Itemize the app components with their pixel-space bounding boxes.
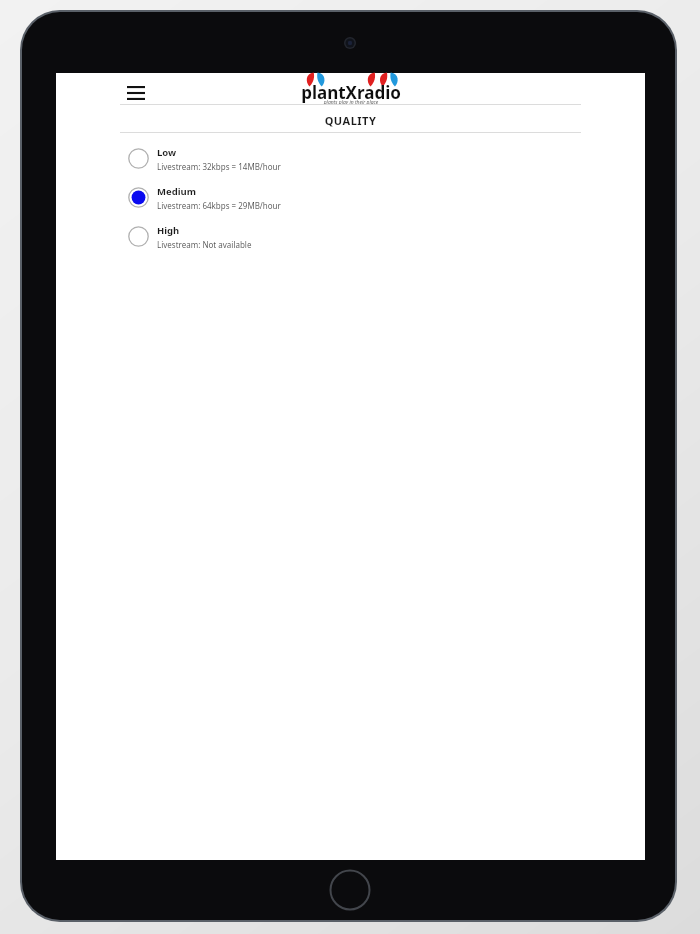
staticText: plants play in their place	[290, 99, 412, 106]
staticText: Low	[157, 146, 177, 159]
button[interactable]: Menu	[118, 75, 154, 111]
staticText: High	[157, 224, 180, 237]
button[interactable]: Medium	[56, 178, 645, 217]
button[interactable]: High	[56, 217, 645, 256]
staticText: QUALITY	[56, 113, 645, 128]
button[interactable]: plantXradio	[290, 73, 412, 113]
button[interactable]: Low	[56, 139, 645, 178]
staticText: Livestream: Not available	[157, 239, 252, 250]
staticText: plantXradio	[290, 81, 412, 104]
staticText: Medium	[157, 185, 196, 198]
staticText: Livestream: 32kbps = 14MB/hour	[157, 161, 281, 172]
staticText: Livestream: 64kbps = 29MB/hour	[157, 200, 281, 211]
